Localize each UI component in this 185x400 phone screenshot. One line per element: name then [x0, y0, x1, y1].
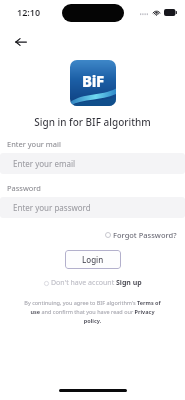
staticText: Login	[82, 254, 104, 265]
button[interactable]: Enter your password	[0, 197, 185, 218]
button[interactable]: Don't have account Sign up	[41, 277, 145, 289]
staticText: 12:10	[17, 6, 41, 18]
staticText: Password	[7, 183, 41, 193]
button[interactable]: By continuing, you agree to BIF algorith…	[24, 299, 161, 325]
staticText: Enter your mail	[7, 139, 61, 149]
staticText: Sign in for BIF algorithm	[0, 115, 185, 129]
staticText: Forgot Password?	[113, 230, 177, 240]
staticText: BiF	[82, 71, 104, 91]
button[interactable]: Login	[65, 250, 121, 269]
staticText: Enter your password	[13, 202, 91, 213]
staticText: Enter your email	[13, 158, 76, 169]
button[interactable]: Forgot Password?	[103, 229, 179, 241]
staticText: Don't have account Sign up	[51, 278, 142, 288]
button[interactable]: Back	[8, 29, 34, 55]
button[interactable]: Enter your email	[0, 153, 185, 174]
